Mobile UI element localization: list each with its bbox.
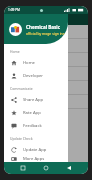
button[interactable]: Developer	[4, 69, 68, 82]
staticText: More Apps	[23, 156, 45, 162]
button[interactable]: More Apps	[4, 156, 68, 162]
button[interactable]: Update App	[4, 143, 68, 156]
staticText: Rate App	[23, 110, 41, 116]
staticText: official by moge sign inn	[26, 31, 65, 36]
staticText: 1:09 PM	[8, 8, 20, 12]
button[interactable]: Recent apps	[19, 164, 27, 172]
staticText: Update Check	[10, 136, 33, 141]
button[interactable]: Home	[42, 164, 50, 172]
button[interactable]: Home	[4, 56, 68, 69]
button[interactable]: Back	[65, 164, 73, 172]
staticText: Developer	[23, 73, 44, 79]
button[interactable]: Feedback	[4, 119, 68, 132]
button[interactable]: Rate App	[4, 106, 68, 119]
staticText: Feedback	[23, 123, 42, 129]
button[interactable]: Share App	[4, 93, 68, 106]
staticText: Home	[23, 60, 35, 66]
staticText: Chemical Basic Pro	[26, 24, 68, 30]
staticText: Share App	[23, 97, 44, 103]
staticText: Communicate	[10, 86, 33, 91]
button[interactable]: Chemical Basic Pro	[4, 14, 68, 44]
staticText: Home	[10, 49, 20, 54]
staticText: Update App	[23, 147, 47, 153]
